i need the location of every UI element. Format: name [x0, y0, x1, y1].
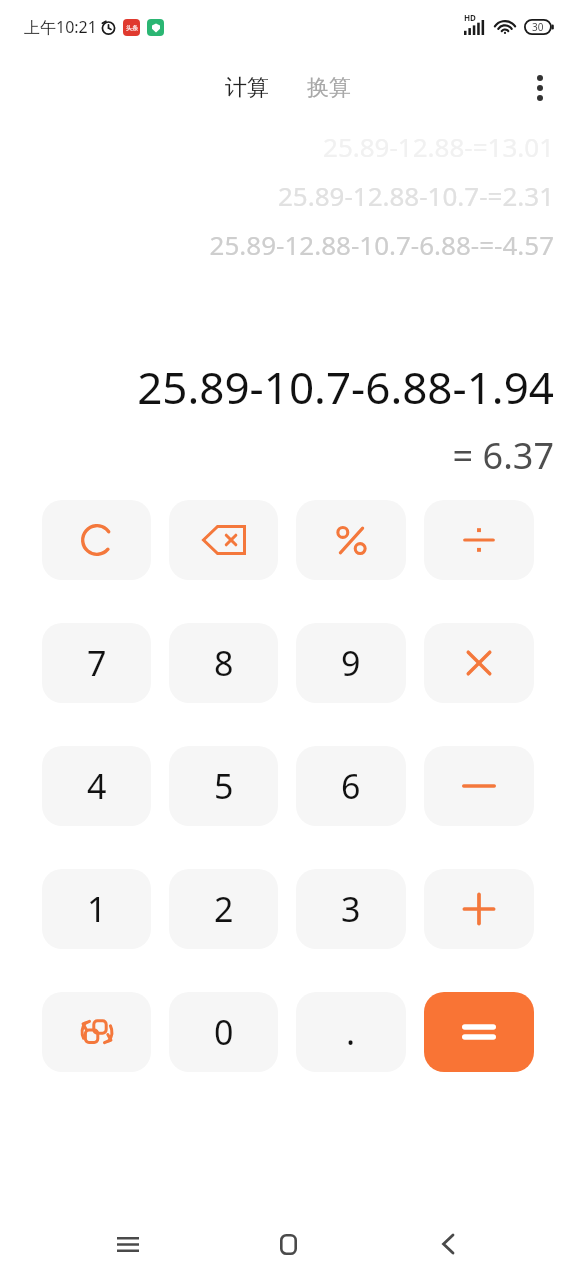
button[interactable]: 换算	[299, 70, 359, 106]
staticText: 换算	[307, 74, 351, 102]
staticText: 0	[214, 1009, 234, 1055]
staticText: 上午10:21	[24, 16, 97, 38]
button[interactable]: Minus	[424, 746, 534, 826]
button[interactable]: Equals	[424, 992, 534, 1072]
button[interactable]: Plus	[424, 869, 534, 949]
button[interactable]: 3	[296, 869, 406, 949]
button[interactable]: 0	[169, 992, 278, 1072]
button[interactable]: Back	[416, 1212, 480, 1276]
button[interactable]: Divide	[424, 500, 534, 580]
button[interactable]: 计算	[217, 70, 277, 106]
staticText: 1	[87, 886, 107, 932]
button[interactable]: 9	[296, 623, 406, 703]
staticText: 25.89-12.88-=13.01	[323, 129, 554, 164]
staticText: 2	[214, 886, 234, 932]
staticText: 计算	[225, 74, 269, 102]
staticText: 25.89-12.88-10.7-6.88-=-4.57	[209, 227, 554, 262]
button[interactable]: Home	[256, 1212, 320, 1276]
staticText: = 6.37	[452, 431, 554, 480]
staticText: 25.89-10.7-6.88-1.94	[137, 357, 554, 417]
button[interactable]: Recent apps	[96, 1212, 160, 1276]
staticText: 25.89-12.88-10.7-=2.31	[277, 178, 554, 213]
staticText: 5	[214, 763, 234, 809]
button[interactable]: Percent	[296, 500, 406, 580]
staticText: 30	[532, 20, 544, 34]
staticText: 7	[87, 640, 107, 686]
button[interactable]: Clear	[42, 500, 151, 580]
staticText: .	[346, 1009, 356, 1055]
button[interactable]: Backspace	[169, 500, 278, 580]
button[interactable]: 5	[169, 746, 278, 826]
staticText: 头条	[126, 24, 138, 32]
staticText: 3	[341, 886, 361, 932]
button[interactable]: 7	[42, 623, 151, 703]
staticText: HD	[464, 12, 476, 23]
button[interactable]: Unit conversion	[42, 992, 151, 1072]
staticText: 4	[87, 763, 107, 809]
button[interactable]: 1	[42, 869, 151, 949]
button[interactable]: 8	[169, 623, 278, 703]
button[interactable]: 2	[169, 869, 278, 949]
button[interactable]: .	[296, 992, 406, 1072]
staticText: 8	[214, 640, 234, 686]
button[interactable]: More options	[516, 64, 564, 112]
staticText: 9	[341, 640, 361, 686]
button[interactable]: 4	[42, 746, 151, 826]
button[interactable]: 6	[296, 746, 406, 826]
button[interactable]: Multiply	[424, 623, 534, 703]
staticText: 6	[341, 763, 361, 809]
